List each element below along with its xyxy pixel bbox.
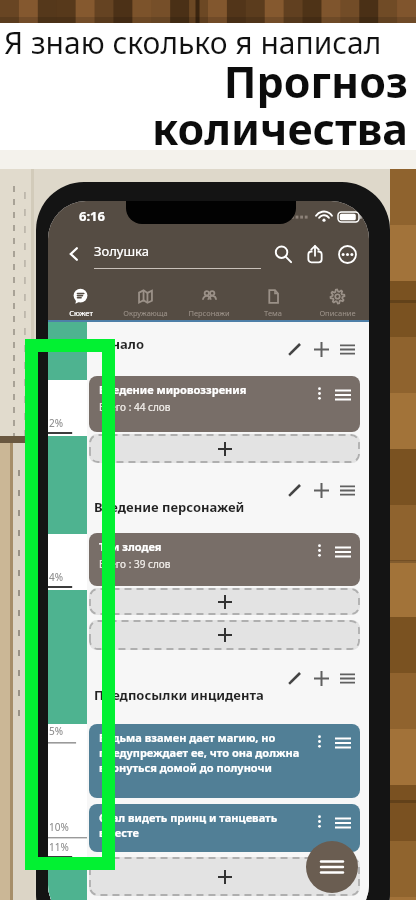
button[interactable]: Персонажи: [177, 285, 241, 321]
button[interactable]: Три злодея: [89, 533, 360, 586]
button[interactable]: Drag handle: [330, 539, 356, 565]
button[interactable]: Reorder: [334, 336, 360, 362]
button[interactable]: Back: [60, 240, 88, 268]
staticText: Описание: [319, 308, 356, 318]
button[interactable]: Drag handle: [330, 730, 356, 756]
button[interactable]: Options: [308, 539, 330, 561]
staticText: Введение мировоззрения: [99, 382, 247, 397]
button[interactable]: Drag handle: [330, 382, 356, 408]
button[interactable]: Окружающа: [113, 285, 177, 321]
staticText: 6:16: [79, 207, 105, 225]
button[interactable]: Add section: [308, 336, 334, 362]
button[interactable]: Add section: [308, 477, 334, 503]
button[interactable]: Menu: [306, 841, 358, 893]
staticText: Введение персонажей: [94, 498, 245, 516]
staticText: 10%: [49, 820, 69, 834]
button[interactable]: Options: [308, 382, 330, 404]
button[interactable]: Share: [301, 240, 329, 268]
button[interactable]: Введение мировоззрения: [89, 376, 360, 432]
button[interactable]: Reorder: [334, 665, 360, 691]
staticText: Я знаю сколько я написал: [4, 22, 416, 63]
staticText: 11%: [49, 840, 69, 854]
button[interactable]: Add item: [89, 434, 360, 463]
button[interactable]: Add item: [89, 857, 360, 896]
staticText: Сюжет: [69, 308, 93, 318]
button[interactable]: Стал видеть принц и танцевать вместе: [89, 804, 360, 852]
button[interactable]: Edit: [282, 336, 308, 362]
staticText: Тема: [264, 308, 282, 318]
staticText: Всего : 39 слов: [99, 557, 171, 571]
staticText: Ведьма взамен дает магию, но предупрежда…: [99, 730, 308, 775]
button[interactable]: Ведьма взамен дает магию, но предупрежда…: [89, 724, 360, 798]
button[interactable]: Edit: [282, 477, 308, 503]
staticText: Предпосылки инцидента: [94, 686, 264, 704]
button[interactable]: Add item: [89, 620, 360, 650]
staticText: 2%: [49, 416, 64, 430]
staticText: Три злодея: [99, 539, 162, 554]
button[interactable]: More options: [333, 240, 361, 268]
staticText: Всего : 44 слов: [99, 400, 171, 414]
button[interactable]: Сюжет: [48, 285, 113, 321]
staticText: 4%: [49, 570, 64, 584]
button[interactable]: Reorder: [334, 477, 360, 503]
button[interactable]: Options: [308, 810, 330, 832]
button[interactable]: Edit: [282, 665, 308, 691]
button[interactable]: Drag handle: [330, 810, 356, 836]
staticText: 5%: [49, 724, 64, 738]
staticText: Персонажи: [188, 308, 230, 318]
button[interactable]: Add item: [89, 588, 360, 615]
button[interactable]: Search: [269, 240, 297, 268]
staticText: Золушка: [94, 242, 149, 260]
button[interactable]: Add section: [308, 665, 334, 691]
staticText: Прогноз количества: [0, 52, 408, 157]
button[interactable]: Описание: [305, 285, 369, 321]
staticText: Окружающа: [123, 308, 168, 318]
staticText: Начало: [94, 335, 144, 353]
button[interactable]: Options: [308, 730, 330, 752]
button[interactable]: Тема: [241, 285, 305, 321]
staticText: Стал видеть принц и танцевать вместе: [99, 810, 308, 840]
